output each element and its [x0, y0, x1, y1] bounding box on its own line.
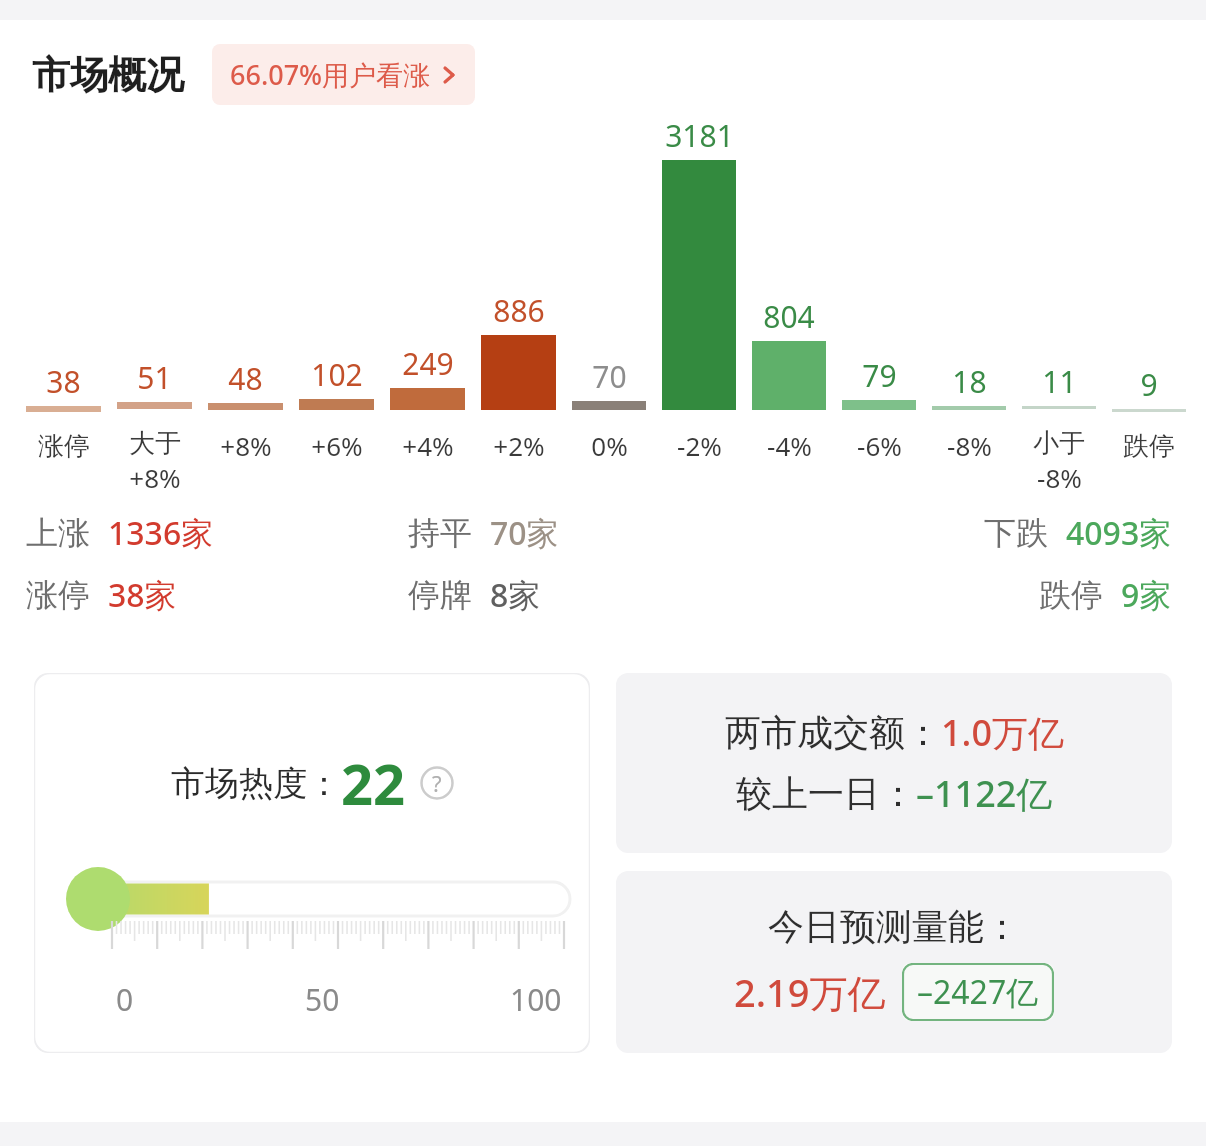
staticText: 804: [763, 296, 815, 337]
staticText: 38家: [108, 573, 177, 617]
staticText: -2%: [677, 428, 722, 463]
staticText: 70家: [490, 511, 559, 555]
staticText: +8%: [129, 460, 181, 495]
staticText: 0: [116, 979, 134, 1020]
staticText: 11: [1042, 361, 1077, 402]
staticText: 跌停: [1039, 575, 1103, 615]
staticText: 886: [493, 290, 545, 331]
staticText: 50: [305, 979, 340, 1020]
staticText: 8家: [490, 573, 541, 617]
staticText: 9家: [1121, 573, 1172, 617]
staticText: 1.0万亿: [941, 708, 1064, 757]
staticText: 涨停: [26, 575, 90, 615]
staticText: ?: [432, 768, 442, 798]
staticText: 18: [952, 361, 987, 402]
staticText: 66.07%用户看涨: [230, 56, 431, 93]
staticText: 上涨: [26, 513, 90, 553]
staticText: 市场热度：: [171, 762, 341, 805]
staticText: 跌停: [1123, 430, 1175, 463]
staticText: 小于: [1033, 427, 1085, 460]
staticText: 较上一日：: [736, 771, 916, 816]
staticText: -8%: [947, 428, 992, 463]
button[interactable]: 帮助: [420, 766, 454, 800]
staticText: 3181: [665, 115, 734, 156]
staticText: 100: [510, 979, 562, 1020]
staticText: 市场概况: [32, 51, 184, 99]
staticText: 今日预测量能：: [768, 904, 1020, 949]
button[interactable]: 市场热度：: [34, 673, 590, 1053]
staticText: 停牌: [408, 575, 472, 615]
staticText: 1336家: [108, 511, 214, 555]
button[interactable]: 今日预测量能：: [616, 871, 1172, 1053]
staticText: 下跌: [984, 513, 1048, 553]
staticText: –1122亿: [916, 769, 1053, 818]
staticText: 79: [862, 355, 897, 396]
staticText: +6%: [311, 428, 363, 463]
staticText: 22: [341, 745, 406, 821]
staticText: 大于: [129, 427, 181, 460]
staticText: 51: [137, 357, 172, 398]
staticText: 70: [592, 356, 627, 397]
staticText: 9: [1140, 364, 1158, 405]
staticText: -4%: [767, 428, 812, 463]
staticText: 48: [228, 358, 263, 399]
staticText: 涨停: [38, 430, 90, 463]
staticText: -6%: [857, 428, 902, 463]
staticText: –2427亿: [917, 970, 1039, 1014]
staticText: 38: [46, 361, 81, 402]
staticText: 0%: [591, 428, 628, 463]
staticText: 4093家: [1066, 511, 1172, 555]
staticText: 249: [402, 343, 454, 384]
staticText: 持平: [408, 513, 472, 553]
staticText: 两市成交额：: [725, 710, 941, 755]
staticText: +8%: [220, 428, 272, 463]
button[interactable]: 两市成交额：: [616, 673, 1172, 853]
staticText: +2%: [493, 428, 545, 463]
staticText: 102: [311, 354, 363, 395]
button[interactable]: 66.07%用户看涨: [212, 44, 475, 105]
staticText: 2.19万亿: [734, 966, 886, 1018]
staticText: +4%: [402, 428, 454, 463]
staticText: -8%: [1037, 460, 1082, 495]
